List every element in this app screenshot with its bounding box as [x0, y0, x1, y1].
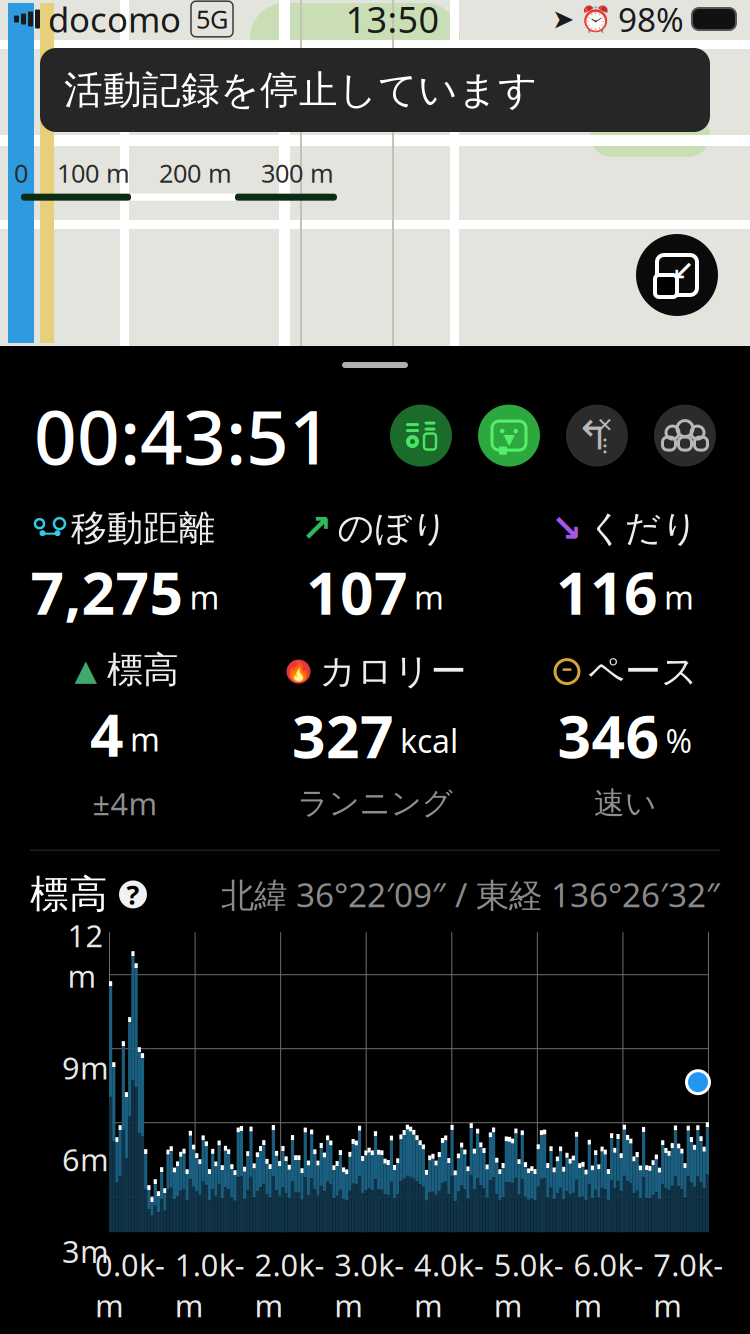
staticText: % — [665, 719, 692, 762]
button[interactable]: 活動記録を停止しています — [40, 48, 710, 132]
staticText: ↰ — [576, 413, 610, 458]
staticText: 6m — [62, 1139, 109, 1180]
staticText: ±4m — [92, 783, 157, 824]
staticText: 6.0km — [573, 1244, 643, 1326]
staticText: 標高 — [30, 871, 108, 918]
staticText: kcal — [400, 719, 458, 762]
staticText: 4.0km — [414, 1244, 484, 1326]
staticText: 4 — [90, 695, 124, 773]
staticText: 移動距離 — [71, 506, 215, 550]
staticText: のぼり — [337, 506, 448, 550]
button[interactable]: ルートとバッテリー — [390, 405, 452, 467]
staticText: ? — [126, 877, 139, 912]
staticText: くだり — [587, 506, 698, 550]
staticText: 327 — [292, 697, 394, 774]
staticText: 9m — [62, 1047, 109, 1088]
staticText: 100 m — [57, 156, 130, 190]
staticText: m — [189, 576, 219, 618]
button[interactable]: グループ — [654, 405, 716, 467]
staticText: 3.0km — [334, 1244, 404, 1326]
staticText: 7,275 — [30, 553, 183, 631]
staticText: 12m — [67, 915, 103, 996]
staticText: ↗ — [301, 507, 332, 549]
staticText: 🔥 — [286, 660, 311, 683]
staticText: ↙ — [672, 256, 694, 286]
staticText: ランニング — [297, 784, 452, 822]
staticText: ↘ — [551, 507, 582, 549]
staticText: 200 m — [159, 156, 232, 190]
staticText: 3m — [62, 1231, 109, 1271]
staticText: 標高 — [107, 648, 179, 692]
staticText: 0 — [14, 156, 28, 190]
staticText: 北緯 36°22′09″ / 東経 136°26′32″ — [221, 872, 720, 917]
button[interactable]: ヘルプ — [118, 879, 148, 909]
staticText: ▾ — [503, 426, 514, 451]
staticText: 00:43:51 — [34, 386, 332, 485]
staticText: 5.0km — [494, 1244, 564, 1326]
button[interactable]: パネルを折りたたむ — [636, 234, 718, 316]
staticText: 1.0km — [175, 1244, 245, 1326]
staticText: 300 m — [261, 156, 334, 190]
staticText: m — [414, 576, 444, 618]
staticText: ✕ — [596, 414, 613, 436]
staticText: ▲ — [74, 653, 97, 687]
staticText: 107 — [306, 553, 408, 631]
staticText: 活動記録を停止しています — [64, 66, 538, 114]
staticText: 2.0km — [254, 1244, 324, 1326]
staticText: 98% — [618, 0, 684, 41]
button[interactable]: メッセージ — [478, 405, 540, 467]
button[interactable]: ルート変更 — [566, 405, 628, 467]
staticText: 346 — [557, 697, 659, 774]
staticText: m — [664, 576, 694, 618]
staticText: ⏰ — [580, 4, 612, 33]
staticText: m — [130, 718, 160, 760]
staticText: 0.0km — [95, 1244, 165, 1326]
staticText: ➤ — [552, 4, 574, 34]
staticText: カロリー — [319, 649, 466, 694]
staticText: ペース — [588, 649, 698, 694]
staticText: 7.0km — [653, 1244, 723, 1326]
staticText: 5G — [196, 2, 228, 36]
staticText: docomo — [48, 0, 181, 42]
staticText: 13:50 — [345, 0, 439, 43]
staticText: 116 — [556, 553, 658, 631]
staticText: 速い — [594, 784, 656, 822]
